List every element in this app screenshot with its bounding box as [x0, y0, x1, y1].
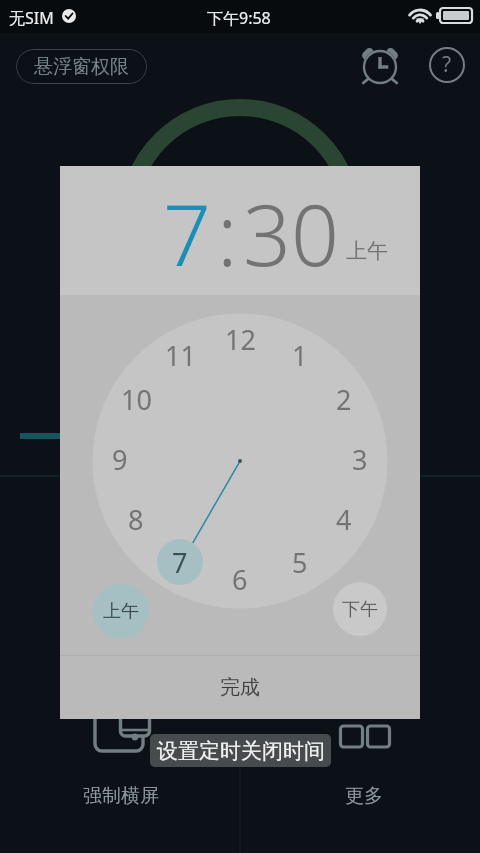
button[interactable]: 强制横屏: [62, 700, 182, 810]
staticText: 悬浮窗权限: [34, 55, 129, 79]
staticText: 10: [121, 381, 152, 418]
staticText: 6: [232, 561, 248, 598]
staticText: :: [217, 176, 238, 290]
staticText: 12: [225, 321, 256, 358]
staticText: 设置定时关闭时间: [157, 738, 325, 764]
button[interactable]: 上午: [93, 583, 149, 639]
staticText: 下午: [342, 598, 378, 621]
staticText: 强制横屏: [83, 784, 159, 808]
staticText: 3: [352, 441, 368, 478]
button[interactable]: 1: [277, 332, 323, 378]
button[interactable]: 30: [243, 176, 339, 290]
button[interactable]: 悬浮窗权限: [16, 49, 147, 84]
button[interactable]: 完成: [60, 656, 420, 719]
staticText: 5: [292, 544, 308, 581]
staticText: 更多: [345, 784, 383, 808]
button[interactable]: 3: [337, 436, 383, 482]
staticText: 7: [172, 544, 188, 581]
button[interactable]: 2: [321, 376, 367, 422]
staticText: 无SIM: [9, 7, 54, 29]
button[interactable]: 6: [217, 556, 263, 602]
staticText: 2: [336, 381, 352, 418]
staticText: 8: [128, 501, 144, 538]
button[interactable]: 8: [113, 496, 159, 542]
staticText: 4: [336, 501, 352, 538]
button[interactable]: Help: [423, 41, 471, 89]
button[interactable]: 更多: [304, 700, 424, 810]
button[interactable]: 下午: [333, 582, 387, 636]
button[interactable]: 7: [163, 176, 211, 290]
button[interactable]: 10: [113, 376, 159, 422]
button[interactable]: 12: [217, 316, 263, 362]
button[interactable]: 9: [97, 436, 143, 482]
button[interactable]: 7: [157, 539, 203, 585]
staticText: 下午9:58: [207, 7, 271, 29]
staticText: 上午: [103, 600, 139, 623]
button[interactable]: Alarm: [356, 41, 404, 89]
button[interactable]: 5: [277, 539, 323, 585]
staticText: ?: [442, 50, 452, 79]
staticText: 11: [165, 337, 196, 374]
staticText: 9: [112, 441, 128, 478]
staticText: 完成: [220, 675, 260, 700]
staticText: 1: [292, 337, 308, 374]
button[interactable]: 4: [321, 496, 367, 542]
button[interactable]: 上午: [346, 238, 388, 264]
button[interactable]: 11: [157, 332, 203, 378]
